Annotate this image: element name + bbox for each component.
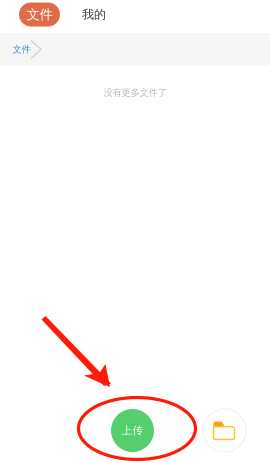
button[interactable]: 文件 [19, 2, 60, 26]
staticText: 我的 [82, 7, 106, 22]
button[interactable]: 我的 [81, 2, 107, 26]
staticText: 上传 [121, 424, 143, 437]
button[interactable]: 文件 [12, 33, 31, 66]
staticText: 没有更多文件了 [103, 87, 166, 98]
staticText: 文件 [26, 6, 52, 23]
button[interactable]: 上传 [111, 409, 154, 452]
staticText: 文件 [12, 44, 30, 55]
button[interactable]: New folder [203, 409, 246, 452]
